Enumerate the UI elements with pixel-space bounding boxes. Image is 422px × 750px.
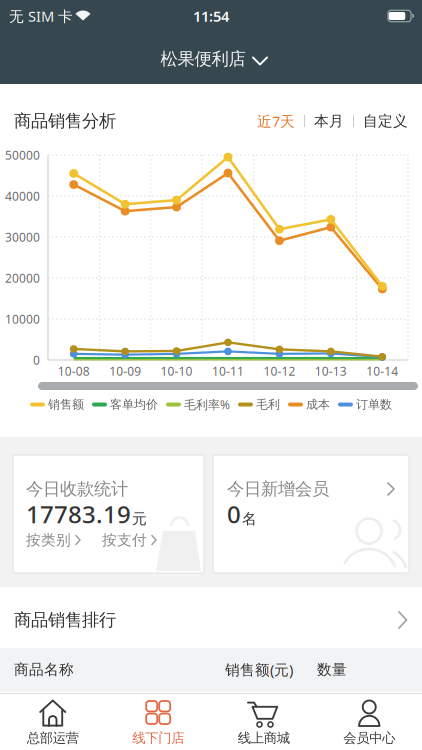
staticText: 10-14 [366, 363, 398, 379]
staticText: 10-11 [212, 363, 244, 379]
staticText: 总部运营 [27, 730, 79, 746]
staticText: 今日收款统计 [26, 478, 128, 500]
button[interactable]: 今日收款统计 [13, 455, 204, 573]
staticText: 0 [227, 498, 241, 530]
staticText: 今日新增会员 [227, 478, 329, 500]
button[interactable]: 自定义 [363, 112, 408, 130]
staticText: 按支付 [102, 531, 147, 549]
staticText: 30000 [5, 229, 40, 245]
staticText: 商品名称 [14, 660, 74, 678]
staticText: 11:54 [193, 6, 229, 26]
staticText: 成本 [306, 397, 330, 412]
staticText: 无 SIM 卡 [9, 6, 73, 26]
staticText: 毛利率% [184, 396, 230, 412]
staticText: 40000 [5, 188, 40, 204]
staticText: 线上商城 [238, 730, 290, 746]
staticText: 客单均价 [110, 397, 158, 412]
staticText: 销售额(元) [225, 660, 293, 679]
staticText: 商品销售分析 [14, 110, 116, 132]
button[interactable]: 近7天 [257, 111, 295, 131]
staticText: 10-13 [315, 363, 347, 379]
staticText: 元 [132, 510, 147, 528]
button[interactable]: 本月 [314, 112, 344, 130]
button[interactable]: 按类别 [26, 531, 82, 549]
staticText: 名 [242, 510, 257, 528]
staticText: 17783.19 [26, 498, 131, 530]
staticText: 10000 [5, 311, 40, 327]
staticText: 销售额 [48, 397, 84, 412]
button[interactable]: 线下门店 [105, 693, 211, 750]
staticText: 50000 [5, 147, 40, 163]
staticText: 本月 [314, 112, 344, 130]
staticText: 0 [33, 352, 40, 368]
button[interactable]: 会员中心 [316, 693, 422, 750]
staticText: 数量 [317, 660, 347, 678]
staticText: 20000 [5, 270, 40, 286]
staticText: 按类别 [26, 531, 71, 549]
staticText: 自定义 [363, 112, 408, 130]
button[interactable]: 按支付 [102, 531, 158, 549]
staticText: 毛利 [256, 397, 280, 412]
staticText: 线下门店 [132, 730, 184, 746]
staticText: 会员中心 [343, 730, 395, 746]
staticText: 10-10 [161, 363, 193, 379]
staticText: 近7天 [257, 111, 295, 131]
staticText: 商品销售排行 [14, 609, 116, 631]
button[interactable]: 总部运营 [0, 693, 105, 750]
button[interactable]: 今日新增会员 [213, 455, 409, 573]
button[interactable]: 商品销售排行 [0, 587, 422, 648]
staticText: 10-08 [58, 363, 90, 379]
staticText: 松果便利店 [160, 48, 245, 70]
button[interactable]: 线上商城 [211, 693, 316, 750]
staticText: 10-09 [109, 363, 141, 379]
staticText: 10-12 [263, 363, 295, 379]
button[interactable]: 切换门店 [160, 48, 267, 70]
staticText: 订单数 [356, 397, 392, 412]
